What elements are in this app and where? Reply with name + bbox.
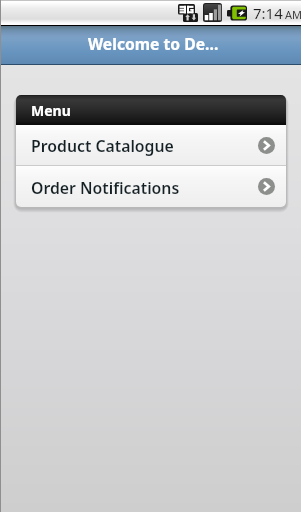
button[interactable]: Product Catalogue: [16, 125, 286, 165]
other: Open: [258, 137, 275, 154]
staticText: Product Catalogue: [31, 135, 174, 157]
staticText: 7:14: [253, 3, 283, 23]
other: Open: [258, 178, 275, 195]
staticText: Menu: [31, 101, 71, 120]
staticText: Order Notifications: [31, 177, 180, 199]
button[interactable]: Order Notifications: [16, 165, 286, 207]
staticText: AM: [285, 7, 303, 22]
staticText: Welcome to De...: [88, 33, 219, 54]
